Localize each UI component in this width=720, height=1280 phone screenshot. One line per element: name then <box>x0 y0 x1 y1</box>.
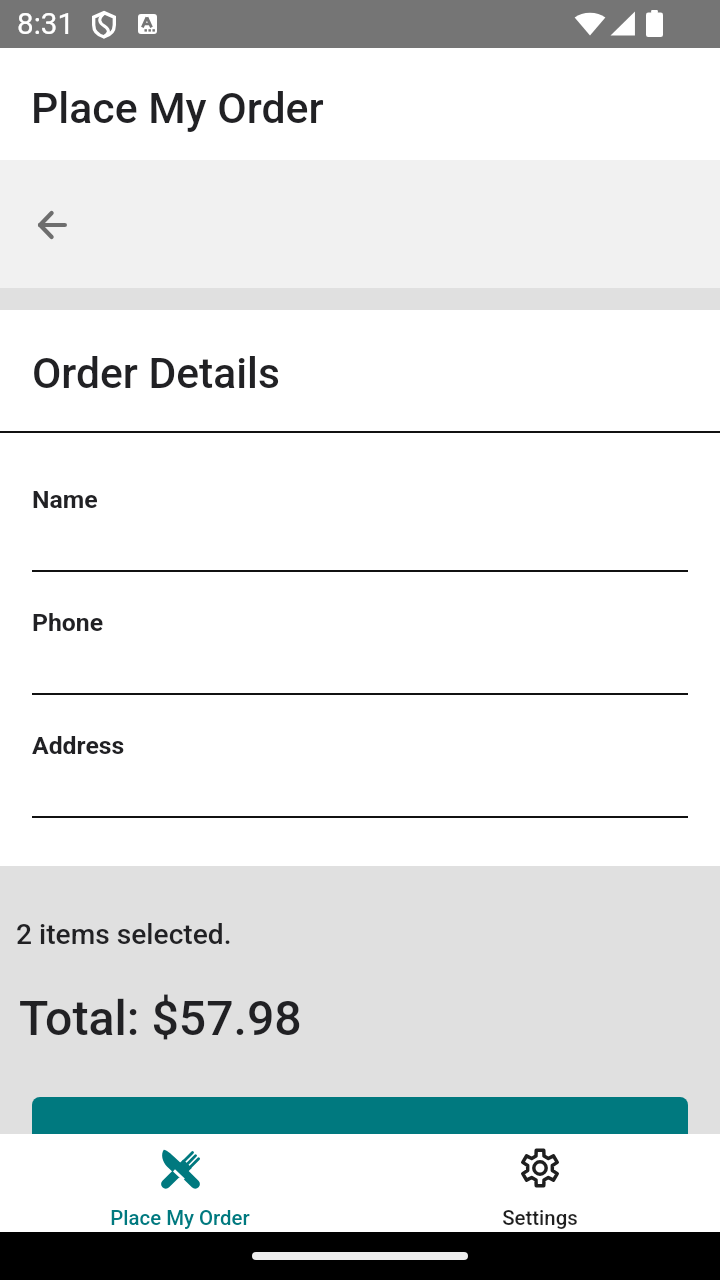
staticText: Place My Order <box>31 83 324 133</box>
staticText: Address <box>32 731 125 760</box>
button[interactable]: Settings <box>360 1134 720 1232</box>
button[interactable]: Phone <box>0 572 720 695</box>
staticText: Order Details <box>32 348 280 398</box>
button[interactable]: Place My Order <box>0 1134 360 1232</box>
staticText: Total: $57.98 <box>19 990 302 1046</box>
button[interactable]: Name <box>0 449 720 572</box>
button[interactable]: Back <box>0 160 720 288</box>
button[interactable]: Place order <box>32 1097 688 1134</box>
staticText: Settings <box>502 1206 578 1230</box>
staticText: 2 items selected. <box>16 918 232 951</box>
staticText: Phone <box>32 608 104 637</box>
staticText: Place My Order <box>110 1206 250 1230</box>
staticText: 8:31 <box>17 7 75 42</box>
button[interactable]: Address <box>0 695 720 818</box>
staticText: Name <box>32 485 98 514</box>
